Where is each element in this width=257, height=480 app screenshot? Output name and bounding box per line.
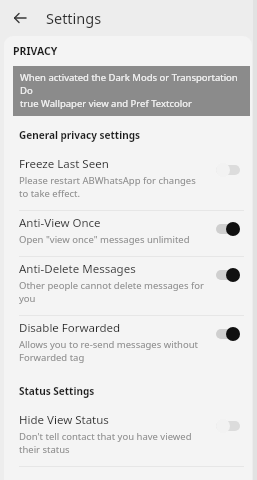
staticText: Other people cannot delete messages for … xyxy=(19,279,204,305)
button[interactable]: Freeze Last Seen toggle xyxy=(214,161,242,179)
staticText: Settings xyxy=(46,8,102,28)
staticText: Open "view once" messages unlimited xyxy=(19,233,190,246)
staticText: Status Settings xyxy=(19,384,95,398)
staticText: Allows you to re-send messages without F… xyxy=(19,338,198,364)
button[interactable]: Hide View Status toggle xyxy=(214,417,242,435)
button[interactable]: Anti-Delete Messages xyxy=(4,257,252,315)
staticText: Anti-View Once xyxy=(19,215,101,231)
staticText: Hide View Status xyxy=(19,412,109,428)
button[interactable]: Anti-View Once toggle xyxy=(214,220,242,238)
button[interactable]: Anti-Delete Messages toggle xyxy=(214,266,242,284)
button[interactable]: Disable Forwarded xyxy=(4,316,252,374)
staticText: PRIVACY xyxy=(13,44,58,58)
staticText: General privacy settings xyxy=(19,128,140,142)
button[interactable]: Freeze Last Seen xyxy=(4,152,252,210)
staticText: Freeze Last Seen xyxy=(19,156,109,172)
staticText: Anti-Delete Messages xyxy=(19,261,136,277)
staticText: Don't tell contact that you have viewed … xyxy=(19,430,192,456)
button[interactable]: Back xyxy=(8,6,32,30)
staticText: Disable Forwarded xyxy=(19,320,121,336)
button[interactable]: Disable Forwarded toggle xyxy=(214,325,242,343)
button[interactable]: Hide View Status xyxy=(4,408,252,466)
staticText: When activated the Dark Mods or Transpor… xyxy=(20,71,244,110)
staticText: Please restart ABWhatsApp for changes to… xyxy=(19,174,196,200)
button[interactable]: Anti-View Once xyxy=(4,211,252,256)
